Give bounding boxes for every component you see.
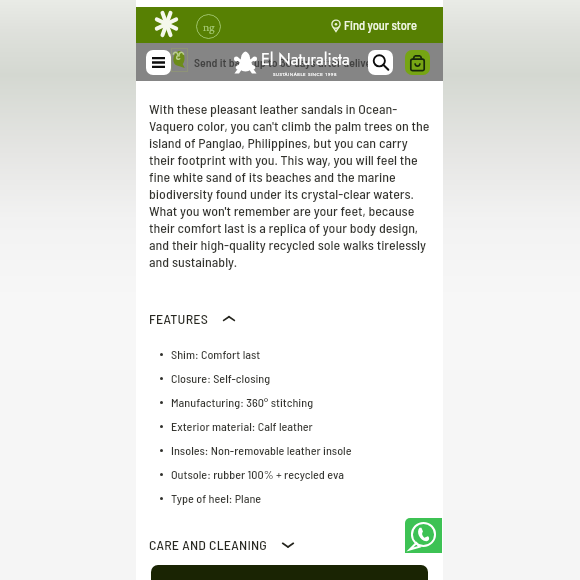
button[interactable]: FEATURES: [149, 310, 435, 327]
staticText: With these pleasant leather sandals in O…: [149, 100, 433, 270]
staticText: Send it back up to 30 days after deliver…: [194, 55, 381, 69]
staticText: FEATURES: [149, 310, 209, 327]
staticText: CARE AND CLEANING: [149, 536, 268, 553]
button[interactable]: [151, 565, 428, 580]
button[interactable]: Chat on WhatsApp: [405, 518, 442, 553]
staticText: El Naturalista: [261, 48, 350, 71]
button[interactable]: Menu: [146, 50, 171, 75]
button[interactable]: El Naturalista home: [156, 12, 177, 36]
staticText: Insoles: Non-removable leather insole: [171, 443, 352, 458]
button[interactable]: CARE AND CLEANING: [149, 536, 435, 553]
staticText: ng: [203, 19, 215, 35]
staticText: Closure: Self-closing: [171, 371, 271, 386]
button[interactable]: Account: [196, 14, 221, 39]
button[interactable]: Find your store: [331, 7, 417, 43]
button[interactable]: Search: [368, 50, 393, 75]
staticText: SUSTAINABLE SINCE 1998: [273, 71, 338, 78]
staticText: Type of heel: Plane: [171, 491, 262, 506]
staticText: Manufacturing: 360° stitching: [171, 395, 314, 410]
button[interactable]: Shopping bag: [405, 50, 430, 75]
staticText: Exterior material: Calf leather: [171, 419, 313, 434]
staticText: Outsole: rubber 100% + recycled eva: [171, 467, 344, 482]
staticText: Find your store: [344, 18, 417, 33]
staticText: Shim: Comfort last: [171, 347, 261, 362]
